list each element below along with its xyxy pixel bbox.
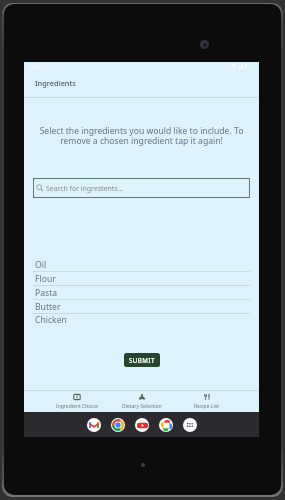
other: Recipe List bbox=[203, 394, 211, 400]
button[interactable]: Dietary Selection bbox=[109, 391, 174, 412]
button[interactable]: Recipe List bbox=[174, 391, 239, 412]
staticText: Chicken bbox=[35, 314, 67, 324]
staticText: 11:00 bbox=[27, 63, 42, 71]
button[interactable]: Ingredient Choice bbox=[44, 391, 109, 412]
staticText: Search for ingredients... bbox=[46, 184, 124, 193]
button[interactable]: Pasta bbox=[33, 286, 250, 300]
button[interactable]: Chicken bbox=[33, 314, 250, 324]
button[interactable]: SUBMIT bbox=[124, 353, 160, 367]
staticText: Ingredient Choice bbox=[56, 403, 98, 410]
button[interactable]: Photos bbox=[159, 418, 173, 432]
button[interactable]: Chrome bbox=[111, 418, 125, 432]
staticText: SUBMIT bbox=[129, 356, 155, 364]
button[interactable]: Gmail bbox=[87, 418, 101, 432]
other: Dietary Selection bbox=[138, 394, 146, 400]
other: Ingredient Choice bbox=[73, 394, 81, 400]
staticText: Pasta bbox=[35, 287, 58, 299]
staticText: Flour bbox=[35, 273, 56, 285]
staticText: Oil bbox=[35, 259, 47, 271]
staticText: Select the ingredients you would like to… bbox=[30, 125, 253, 146]
staticText: Ingredients bbox=[35, 78, 76, 88]
staticText: Butter bbox=[35, 301, 61, 313]
staticText: Recipe List bbox=[194, 403, 219, 410]
button[interactable]: Butter bbox=[33, 300, 250, 314]
button[interactable]: Search for ingredients... bbox=[33, 178, 250, 198]
button[interactable]: Oil bbox=[33, 258, 250, 272]
button[interactable]: YouTube bbox=[135, 418, 149, 432]
staticText: Dietary Selection bbox=[122, 403, 162, 410]
button[interactable]: All apps bbox=[183, 418, 197, 432]
button[interactable]: Flour bbox=[33, 272, 250, 286]
